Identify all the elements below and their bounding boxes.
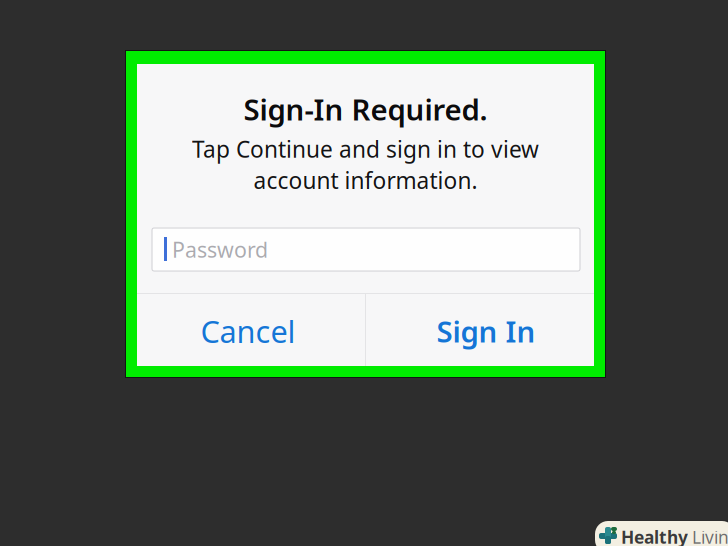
staticText: Healthy xyxy=(621,525,688,546)
staticText: Password xyxy=(172,235,268,264)
staticText: account information. xyxy=(253,165,477,195)
staticText: Tap Continue and sign in to view xyxy=(192,134,539,164)
staticText: Sign-In Required. xyxy=(243,89,487,128)
staticText: Cancel xyxy=(200,311,295,351)
staticText: Living xyxy=(692,525,728,546)
button[interactable]: Sign In xyxy=(372,295,600,367)
button[interactable]: Cancel xyxy=(134,295,362,367)
staticText: Sign In xyxy=(436,311,535,350)
